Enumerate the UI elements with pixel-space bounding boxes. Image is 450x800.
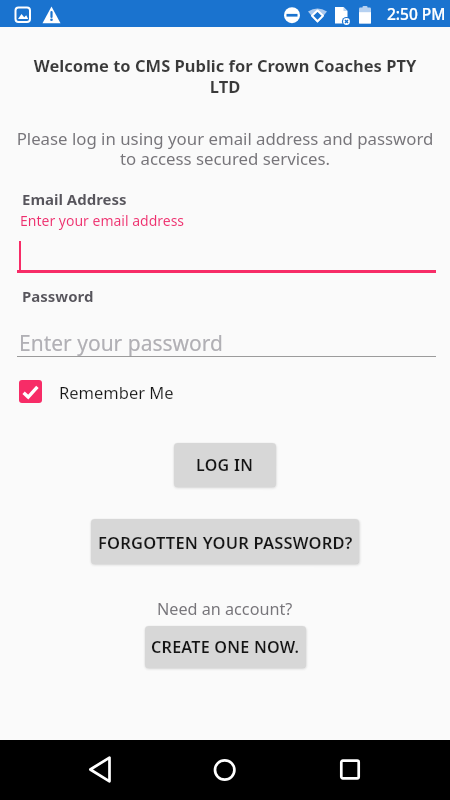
button[interactable]: Remember Me (19, 380, 174, 403)
staticText: Please log in using your email address a… (0, 127, 450, 170)
staticText: Welcome to CMS Public for Crown Coaches … (0, 54, 450, 98)
staticText: FORGOTTEN YOUR PASSWORD? (98, 531, 353, 553)
staticText: Need an account? (157, 598, 293, 620)
staticText: Password (22, 286, 94, 306)
button[interactable] (205, 750, 245, 790)
button[interactable] (330, 750, 370, 790)
button[interactable]: FORGOTTEN YOUR PASSWORD? (91, 519, 359, 564)
staticText: Remember Me (59, 381, 174, 403)
staticText: 2:50 PM (387, 3, 446, 24)
staticText: CREATE ONE NOW. (151, 636, 300, 658)
button[interactable]: CREATE ONE NOW. (145, 626, 306, 668)
staticText: Enter your password (19, 329, 223, 358)
staticText: Enter your email address (20, 211, 185, 230)
button[interactable]: LOG IN (174, 443, 276, 487)
staticText: LOG IN (196, 454, 254, 476)
staticText: Email Address (22, 189, 127, 209)
button[interactable] (80, 750, 120, 790)
